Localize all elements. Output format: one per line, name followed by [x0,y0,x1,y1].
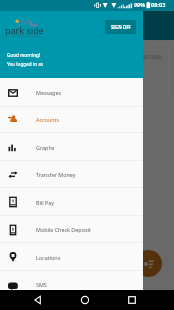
staticText: 99% [134,1,146,8]
button[interactable]: Back [29,290,47,310]
staticText: 08:03 [151,1,166,9]
button[interactable]: Accounts [0,106,143,133]
button[interactable]: SIGN OFF [105,20,136,34]
staticText: SIGN OFF [111,24,131,30]
staticText: You logged in as [7,61,44,67]
button[interactable]: Transfer Money [0,161,143,188]
staticText: Bill Pay [36,199,55,206]
button[interactable]: Bill Pay [0,188,143,216]
staticText: $0.0000 [143,54,162,61]
button[interactable]: Messages [0,78,143,107]
staticText: Messages [36,89,62,96]
staticText: CREDIT UNION [9,34,41,38]
staticText: Graphs [36,144,55,151]
button[interactable]: Locations [0,243,143,271]
staticText: park side [5,24,44,36]
staticText: SMS [36,281,47,288]
button[interactable]: Add [135,250,162,277]
staticText: Mobile Check Deposit [36,226,91,233]
staticText: Transfer Money [36,171,76,178]
staticText: Locations [36,254,61,261]
button[interactable]: SMS [0,271,143,298]
button[interactable]: Mobile Check Deposit [0,216,143,243]
staticText: Accounts [36,116,60,123]
button[interactable]: Recents [123,290,141,310]
button[interactable]: Home [76,290,94,310]
button[interactable]: Graphs [0,133,143,161]
staticText: Good morning! [7,52,41,58]
